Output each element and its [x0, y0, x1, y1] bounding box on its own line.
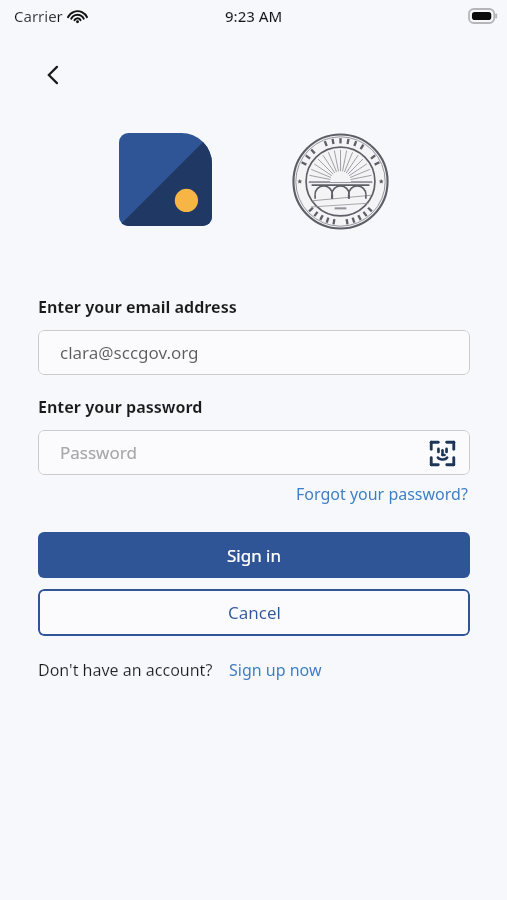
- button[interactable]: Forgot your password?: [294, 481, 470, 507]
- button[interactable]: Sign in with Face ID: [427, 438, 457, 468]
- staticText: Enter your password: [38, 396, 203, 418]
- button[interactable]: Back: [32, 54, 74, 96]
- staticText: Enter your email address: [38, 296, 237, 318]
- staticText: clara@sccgov.org: [60, 341, 199, 364]
- staticText: 9:23 AM: [225, 6, 283, 26]
- staticText: Forgot your password?: [296, 483, 468, 505]
- button[interactable]: Cancel: [38, 589, 470, 636]
- button[interactable]: Sign in: [38, 532, 470, 578]
- staticText: Carrier: [14, 6, 63, 26]
- staticText: Don't have an account?: [38, 659, 213, 681]
- staticText: Password: [60, 441, 137, 464]
- staticText: Sign in: [227, 544, 281, 567]
- button[interactable]: Password: [38, 430, 470, 475]
- button[interactable]: Sign up now: [227, 657, 324, 683]
- staticText: Cancel: [228, 601, 281, 624]
- button[interactable]: clara@sccgov.org: [38, 330, 470, 375]
- staticText: Sign up now: [229, 659, 322, 681]
